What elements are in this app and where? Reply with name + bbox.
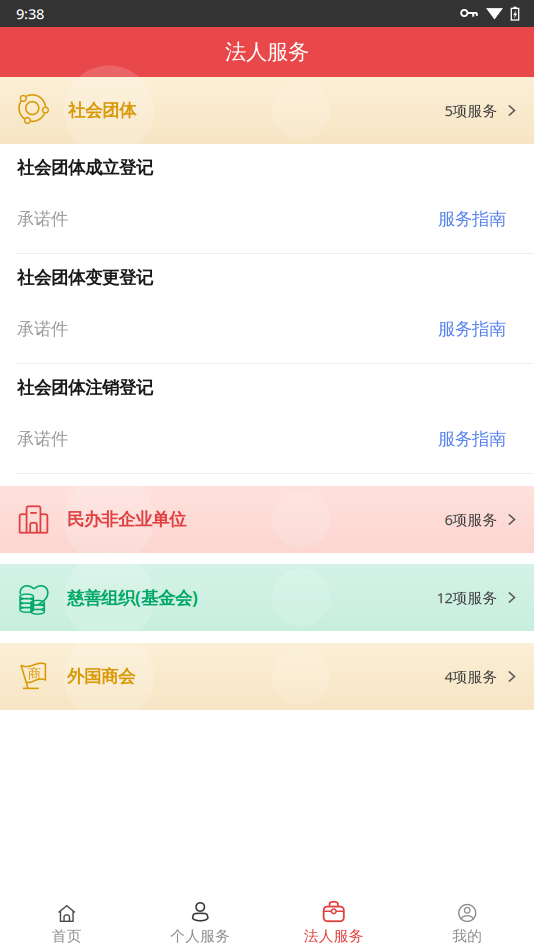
staticText: 外国商会 [67, 666, 135, 687]
button[interactable]: 慈善组织(基金会) [0, 564, 534, 631]
button[interactable]: 社会团体成立登记 [0, 144, 534, 253]
staticText: 社会团体注销登记 [17, 377, 153, 398]
staticText: 社会团体变更登记 [17, 267, 153, 288]
staticText: 商 [28, 666, 41, 682]
staticText: 12项服务 [437, 588, 498, 607]
button[interactable]: 民办非企业单位 [0, 486, 534, 553]
button[interactable]: 首页 [0, 888, 133, 950]
staticText: 首页 [52, 927, 82, 945]
button[interactable]: 我的 [400, 888, 534, 950]
button[interactable]: 商 [0, 643, 534, 710]
staticText: 法人服务 [225, 39, 309, 65]
staticText: 4项服务 [445, 667, 498, 686]
button[interactable]: 社会团体变更登记 [0, 254, 534, 363]
staticText: 民办非企业单位 [67, 509, 186, 530]
staticText: 承诺件 [17, 318, 68, 340]
staticText: 服务指南 [438, 208, 506, 230]
staticText: 个人服务 [170, 927, 230, 945]
staticText: 6项服务 [445, 510, 498, 529]
staticText: 社会团体成立登记 [17, 157, 153, 178]
staticText: 我的 [452, 927, 482, 945]
button[interactable]: 社会团体注销登记 [0, 364, 534, 473]
staticText: 承诺件 [17, 428, 68, 450]
staticText: 服务指南 [438, 318, 506, 340]
staticText: 5项服务 [445, 101, 498, 120]
staticText: 社会团体 [68, 100, 136, 121]
staticText: 9:38 [16, 4, 44, 23]
button[interactable]: 法人服务 [267, 888, 400, 950]
button[interactable]: 个人服务 [133, 888, 267, 950]
staticText: 慈善组织(基金会) [67, 586, 198, 609]
button[interactable]: 社会团体 [0, 77, 534, 144]
staticText: 承诺件 [17, 208, 68, 230]
staticText: 法人服务 [304, 927, 364, 945]
staticText: 服务指南 [438, 428, 506, 450]
